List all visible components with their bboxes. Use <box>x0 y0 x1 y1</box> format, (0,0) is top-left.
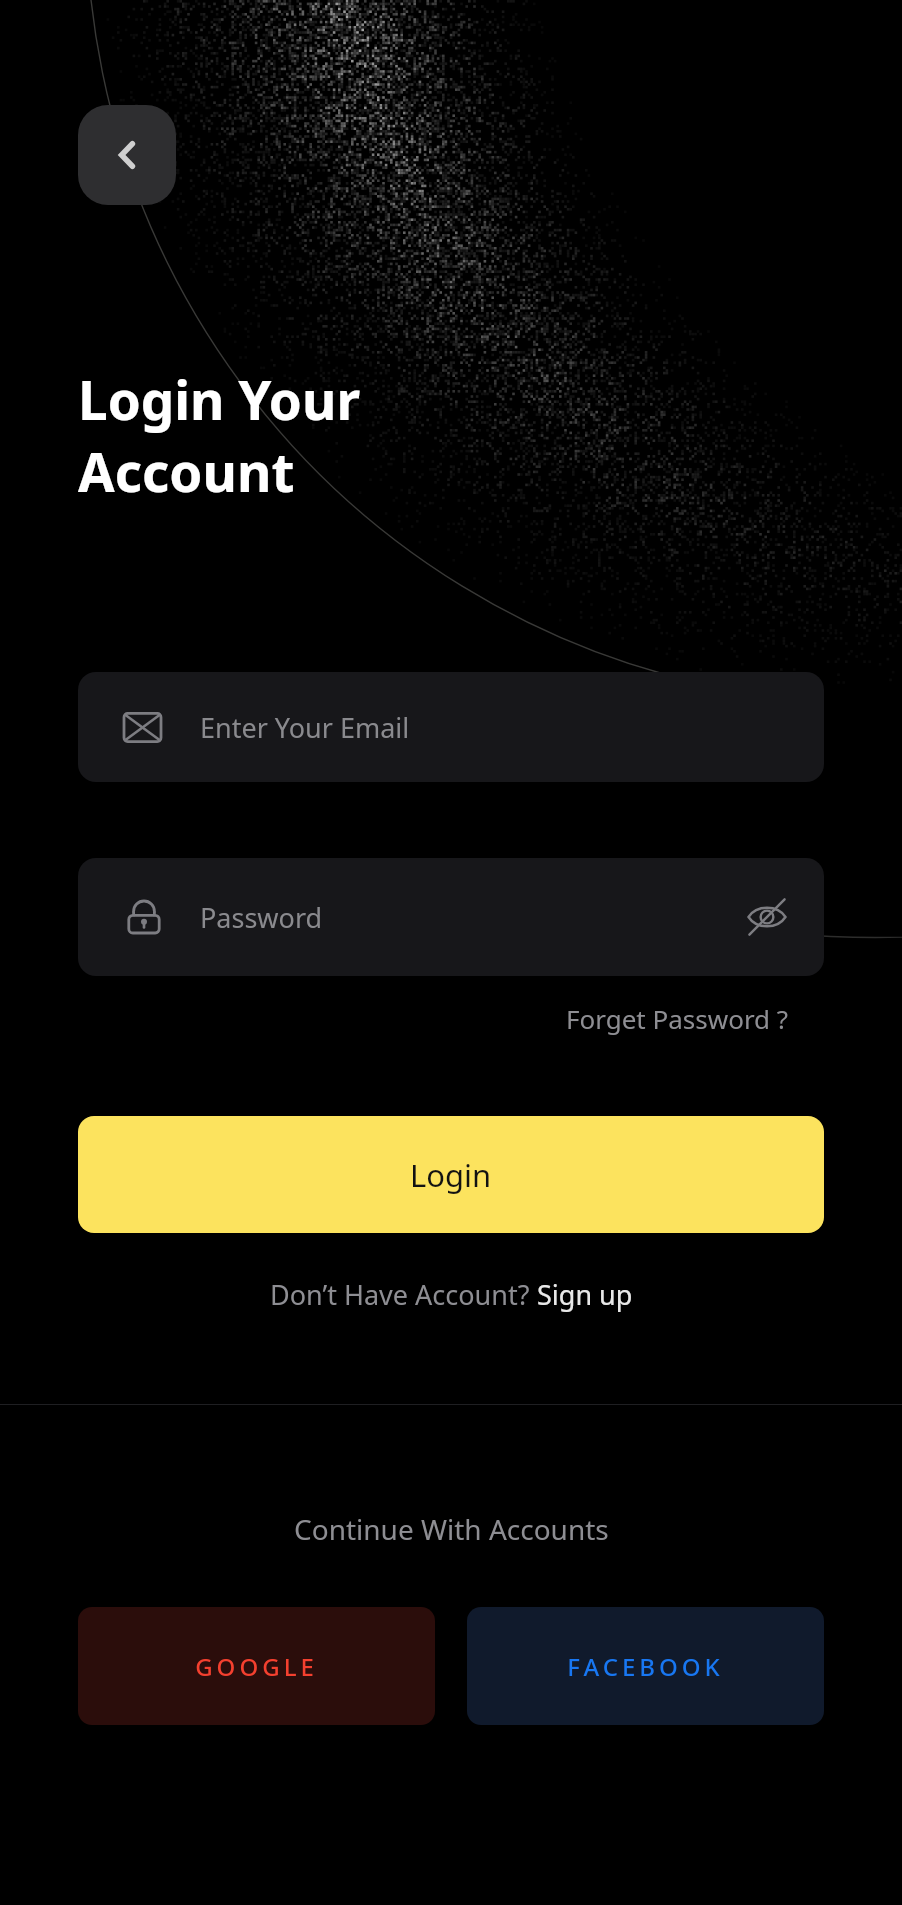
staticText: Don’t Have Account? <box>270 1276 537 1313</box>
staticText: Sign up <box>537 1276 633 1313</box>
button[interactable]: Back <box>78 105 176 205</box>
staticText: GOOGLE <box>195 1650 318 1683</box>
button[interactable]: GOOGLE <box>78 1607 435 1725</box>
button[interactable]: Toggle password visibility <box>736 886 798 948</box>
staticText: Login <box>410 1154 492 1196</box>
button[interactable]: FACEBOOK <box>467 1607 824 1725</box>
button[interactable]: Enter Your Email <box>78 672 824 782</box>
staticText: Login Your <box>78 363 361 435</box>
staticText: Continue With Accounts <box>294 1510 609 1548</box>
button[interactable]: Login <box>78 1116 824 1233</box>
staticText: FACEBOOK <box>567 1650 724 1683</box>
button[interactable]: Don’t Have Account? <box>266 1272 637 1317</box>
button[interactable]: Password <box>78 858 824 976</box>
staticText: Enter Your Email <box>200 709 410 746</box>
button[interactable]: Forget Password ? <box>560 995 795 1042</box>
staticText: Account <box>78 435 295 507</box>
staticText: Password <box>200 899 323 936</box>
staticText: Forget Password ? <box>566 1001 789 1036</box>
